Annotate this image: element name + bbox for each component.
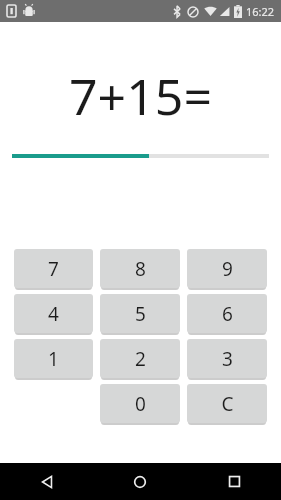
- staticText: 16:22: [246, 4, 275, 19]
- staticText: 8: [135, 256, 146, 282]
- staticText: 3: [222, 346, 233, 372]
- staticText: 2: [135, 346, 146, 372]
- staticText: 7: [48, 256, 59, 282]
- staticText: 0: [135, 391, 146, 417]
- button[interactable]: Back: [0, 463, 93, 500]
- staticText: 7+15=: [0, 62, 281, 130]
- button[interactable]: 8: [100, 249, 180, 288]
- staticText: 9: [222, 256, 233, 282]
- staticText: 1: [48, 346, 59, 372]
- button[interactable]: Recent apps: [187, 463, 281, 500]
- staticText: C: [221, 391, 234, 417]
- button[interactable]: 4: [14, 294, 93, 333]
- staticText: 5: [135, 301, 146, 327]
- staticText: 4: [48, 301, 59, 327]
- button[interactable]: C: [187, 384, 267, 423]
- button[interactable]: Home: [93, 463, 187, 500]
- button[interactable]: 9: [187, 249, 267, 288]
- staticText: 6: [222, 301, 233, 327]
- button[interactable]: 5: [100, 294, 180, 333]
- button[interactable]: 0: [100, 384, 180, 423]
- button[interactable]: 6: [187, 294, 267, 333]
- button[interactable]: 3: [187, 339, 267, 378]
- button[interactable]: 7: [14, 249, 93, 288]
- button[interactable]: 2: [100, 339, 180, 378]
- button[interactable]: 1: [14, 339, 93, 378]
